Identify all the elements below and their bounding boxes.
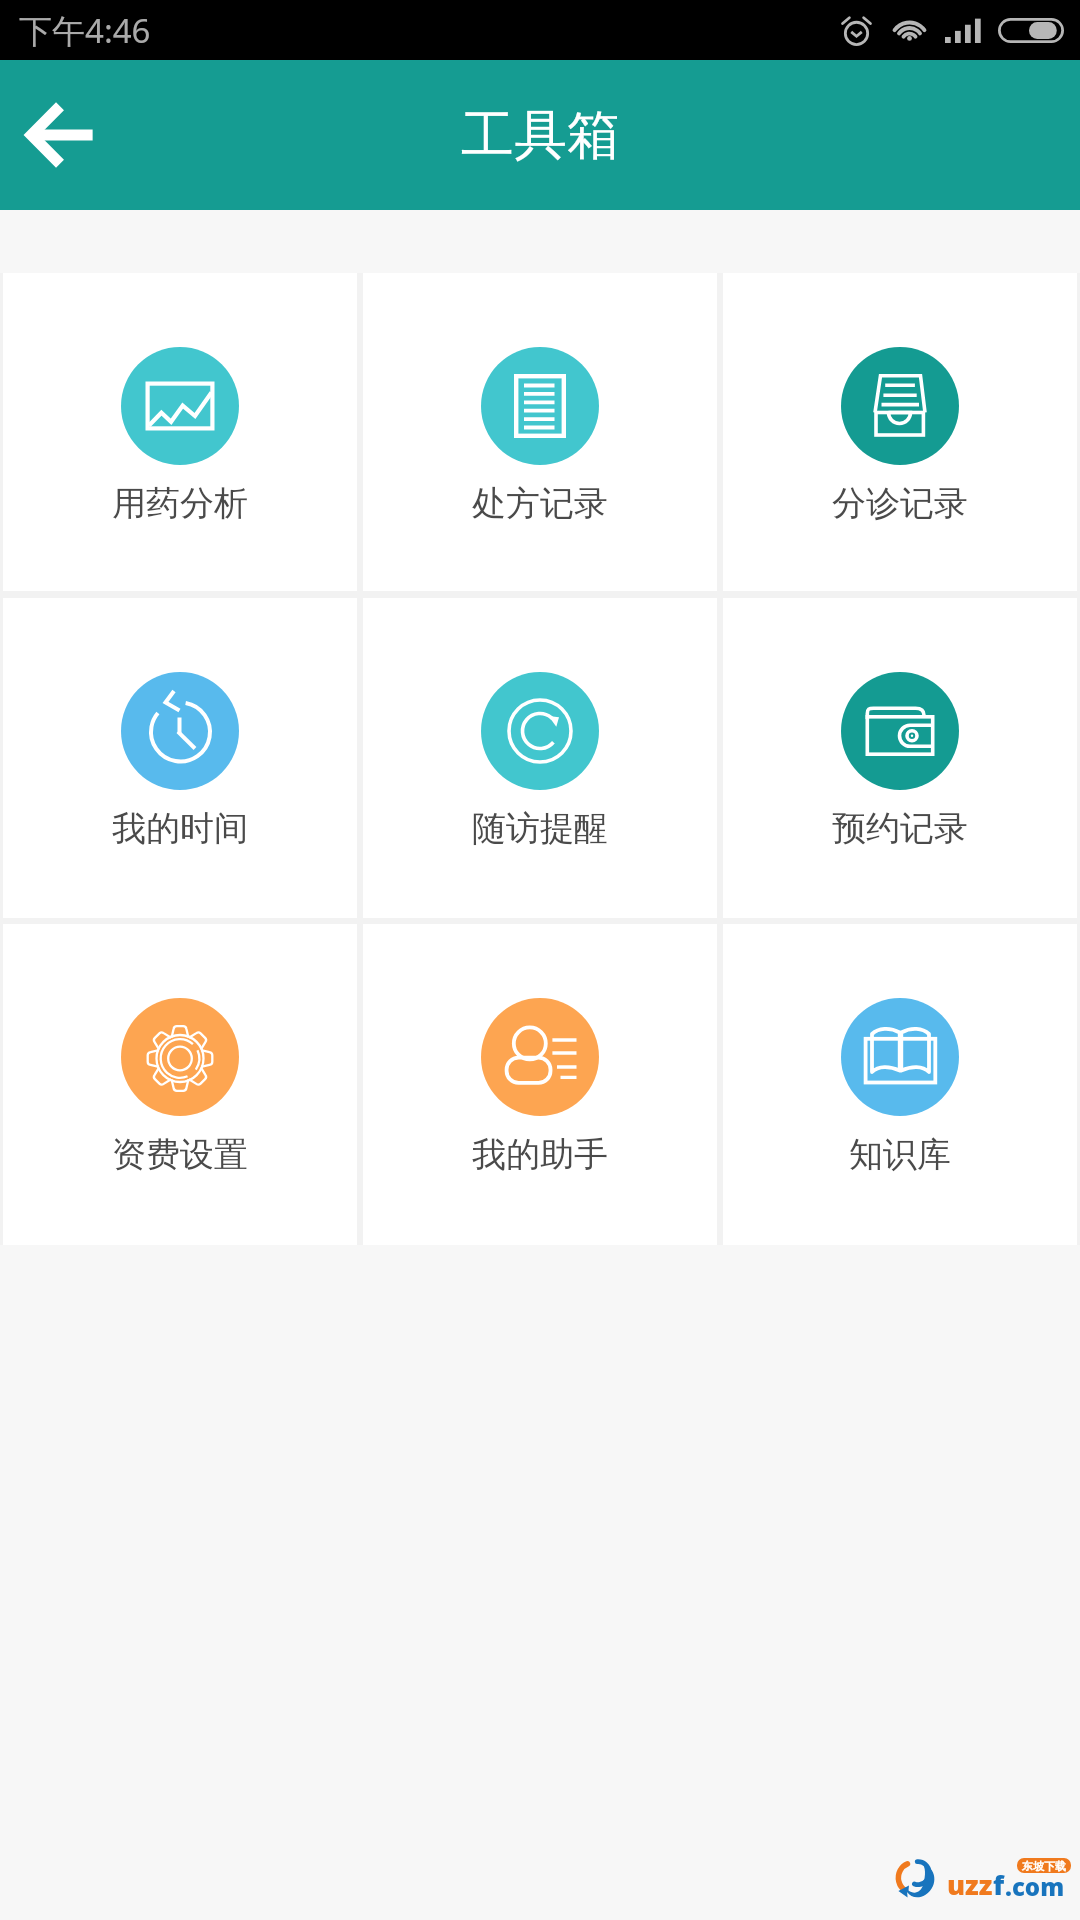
staticText: uzz bbox=[947, 1866, 993, 1903]
button[interactable]: 处方记录 bbox=[363, 273, 717, 591]
staticText: f bbox=[993, 1866, 1005, 1903]
button[interactable]: 分诊记录 bbox=[723, 273, 1077, 591]
staticText: 下午4:46 bbox=[19, 8, 151, 53]
staticText: 随访提醒 bbox=[472, 807, 608, 850]
staticText: .com bbox=[1005, 1870, 1065, 1903]
button[interactable]: 我的助手 bbox=[363, 924, 717, 1245]
staticText: 东坡下载 bbox=[1022, 1859, 1066, 1873]
staticText: 处方记录 bbox=[472, 482, 608, 525]
button[interactable]: 我的时间 bbox=[3, 598, 357, 918]
staticText: 我的时间 bbox=[112, 807, 248, 850]
staticText: 用药分析 bbox=[112, 482, 248, 525]
staticText: 分诊记录 bbox=[832, 482, 968, 525]
staticText: 知识库 bbox=[849, 1133, 951, 1176]
staticText: 资费设置 bbox=[112, 1133, 248, 1176]
staticText: 我的助手 bbox=[472, 1133, 608, 1176]
button[interactable]: 用药分析 bbox=[3, 273, 357, 591]
button[interactable]: Back bbox=[0, 60, 128, 210]
button[interactable]: 随访提醒 bbox=[363, 598, 717, 918]
button[interactable]: 资费设置 bbox=[3, 924, 357, 1245]
staticText: 工具箱 bbox=[461, 102, 620, 169]
staticText: 预约记录 bbox=[832, 807, 968, 850]
button[interactable]: 预约记录 bbox=[723, 598, 1077, 918]
button[interactable]: 知识库 bbox=[723, 924, 1077, 1245]
